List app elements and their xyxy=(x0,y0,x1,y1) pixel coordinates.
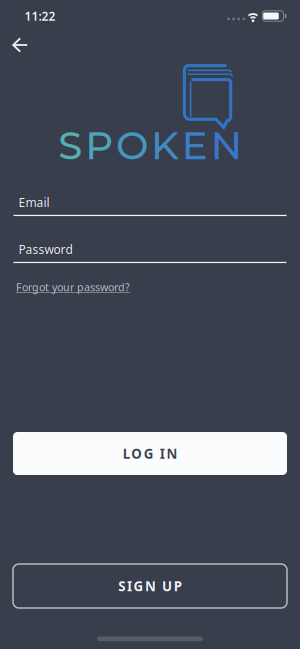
staticText: P xyxy=(85,122,113,169)
button[interactable] xyxy=(12,37,29,53)
staticText: N xyxy=(166,445,177,462)
staticText: N xyxy=(145,577,156,595)
staticText: Email xyxy=(18,194,49,210)
staticText: E xyxy=(182,122,208,169)
staticText: 11:22 xyxy=(24,8,55,24)
button[interactable]: Password xyxy=(13,241,286,263)
staticText: K xyxy=(151,122,179,169)
staticText: U xyxy=(162,577,172,595)
staticText: S xyxy=(118,577,125,595)
staticText: O xyxy=(131,445,142,462)
staticText: S xyxy=(58,122,82,169)
button[interactable]: Email xyxy=(13,194,286,216)
staticText: G xyxy=(144,445,154,462)
staticText: G xyxy=(133,577,143,595)
staticText: I xyxy=(127,577,132,595)
staticText: I xyxy=(160,445,165,462)
staticText: P xyxy=(174,577,182,595)
staticText: O xyxy=(116,122,148,169)
staticText: N xyxy=(211,122,242,169)
button[interactable]: S xyxy=(13,564,287,608)
staticText: L xyxy=(123,445,130,462)
staticText: Forgot your password? xyxy=(16,280,130,294)
staticText: Password xyxy=(18,241,72,257)
button[interactable]: Forgot your password? xyxy=(16,280,130,294)
button[interactable]: L xyxy=(13,432,287,475)
